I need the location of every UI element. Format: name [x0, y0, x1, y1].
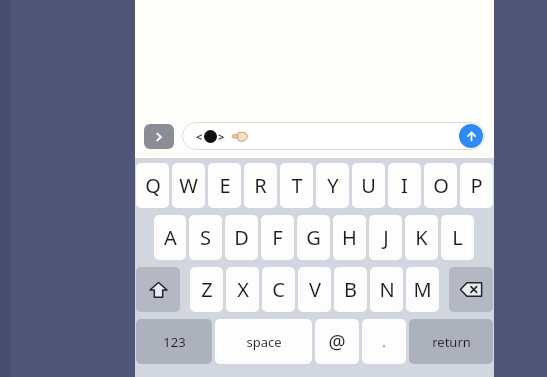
- button[interactable]: @: [315, 319, 359, 364]
- button[interactable]: space: [215, 319, 312, 364]
- staticText: T: [291, 172, 303, 199]
- button[interactable]: Q: [136, 163, 169, 208]
- staticText: H: [342, 224, 357, 251]
- button[interactable]: S: [189, 215, 222, 260]
- staticText: C: [272, 276, 285, 303]
- button[interactable]: 123: [136, 319, 212, 364]
- button[interactable]: .: [362, 319, 406, 364]
- button[interactable]: R: [244, 163, 277, 208]
- button[interactable]: O: [424, 163, 457, 208]
- staticText: P: [470, 172, 483, 199]
- staticText: D: [234, 224, 249, 251]
- staticText: S: [200, 224, 211, 251]
- button[interactable]: M: [406, 267, 439, 312]
- staticText: J: [383, 224, 389, 251]
- staticText: R: [254, 172, 267, 199]
- button[interactable]: Y: [316, 163, 349, 208]
- staticText: B: [344, 276, 357, 303]
- staticText: Q: [145, 172, 161, 199]
- button[interactable]: Delete: [449, 267, 493, 312]
- button[interactable]: I: [388, 163, 421, 208]
- staticText: L: [452, 224, 463, 251]
- staticText: G: [306, 224, 321, 251]
- button[interactable]: T: [280, 163, 313, 208]
- button[interactable]: A: [154, 215, 186, 260]
- button[interactable]: E: [208, 163, 241, 208]
- button[interactable]: N: [370, 267, 403, 312]
- staticText: F: [272, 224, 283, 251]
- staticText: X: [237, 276, 249, 303]
- button[interactable]: D: [225, 215, 258, 260]
- staticText: V: [309, 276, 321, 303]
- button[interactable]: X: [226, 267, 259, 312]
- button[interactable]: U: [352, 163, 385, 208]
- staticText: @: [328, 329, 346, 355]
- staticText: W: [179, 172, 198, 199]
- button[interactable]: Shift: [136, 267, 180, 312]
- staticText: .: [382, 333, 386, 351]
- button[interactable]: W: [172, 163, 205, 208]
- button[interactable]: J: [369, 215, 402, 260]
- staticText: space: [246, 333, 282, 351]
- staticText: E: [219, 172, 231, 199]
- staticText: Y: [327, 172, 339, 199]
- staticText: I: [401, 172, 408, 199]
- button[interactable]: Send: [459, 124, 483, 148]
- staticText: U: [361, 172, 376, 199]
- staticText: O: [433, 172, 449, 199]
- staticText: <: [196, 129, 203, 144]
- button[interactable]: L: [441, 215, 474, 260]
- button[interactable]: V: [298, 267, 331, 312]
- staticText: Z: [201, 276, 213, 303]
- button[interactable]: <: [182, 122, 485, 150]
- button[interactable]: C: [262, 267, 295, 312]
- button[interactable]: F: [261, 215, 294, 260]
- button[interactable]: Z: [190, 267, 223, 312]
- button[interactable]: return: [409, 319, 493, 364]
- staticText: K: [415, 224, 428, 251]
- staticText: return: [432, 333, 471, 351]
- staticText: N: [379, 276, 395, 303]
- button[interactable]: K: [405, 215, 438, 260]
- button[interactable]: G: [297, 215, 330, 260]
- button[interactable]: P: [460, 163, 493, 208]
- staticText: >: [218, 129, 225, 144]
- staticText: 123: [163, 333, 186, 351]
- staticText: A: [164, 224, 177, 251]
- staticText: M: [413, 276, 432, 303]
- button[interactable]: Show apps: [144, 124, 174, 149]
- button[interactable]: B: [334, 267, 367, 312]
- button[interactable]: H: [333, 215, 366, 260]
